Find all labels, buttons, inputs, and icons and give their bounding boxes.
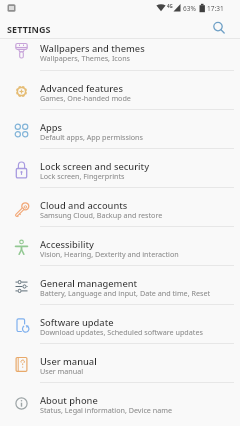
staticText: Samsung Cloud, Backup and restore bbox=[40, 210, 163, 220]
staticText: 63% bbox=[183, 4, 196, 13]
staticText: Vision, Hearing, Dexterity and interacti… bbox=[40, 249, 179, 259]
staticText: Default apps, App permissions bbox=[40, 132, 143, 142]
staticText: User manual bbox=[40, 355, 97, 368]
staticText: Software update bbox=[40, 316, 114, 329]
staticText: Games, One-handed mode bbox=[40, 93, 131, 103]
staticText: Wallpapers, Themes, Icons bbox=[40, 53, 131, 63]
staticText: Cloud and accounts bbox=[40, 199, 128, 212]
staticText: Status, Legal information, Device name bbox=[40, 405, 173, 415]
button[interactable]: Cloud and accounts bbox=[0, 188, 240, 227]
staticText: Download updates, Scheduled software upd… bbox=[40, 327, 203, 337]
button[interactable]: User manual bbox=[0, 344, 240, 383]
button[interactable]: Advanced features bbox=[0, 71, 240, 110]
button[interactable]: Software update bbox=[0, 305, 240, 344]
button[interactable]: Lock screen and security bbox=[0, 149, 240, 188]
staticText: Advanced features bbox=[40, 82, 123, 95]
staticText: 17:31 bbox=[207, 4, 224, 13]
staticText: 4G bbox=[167, 3, 173, 9]
staticText: General management bbox=[40, 277, 138, 290]
button[interactable]: Accessibility bbox=[0, 227, 240, 266]
staticText: About phone bbox=[40, 394, 98, 407]
staticText: SETTINGS bbox=[7, 23, 51, 35]
staticText: Apps bbox=[40, 121, 63, 134]
staticText: Battery, Language and input, Date and ti… bbox=[40, 288, 211, 298]
button[interactable]: Wallpapers and themes bbox=[0, 39, 240, 71]
staticText: Wallpapers and themes bbox=[40, 42, 145, 55]
staticText: Lock screen and security bbox=[40, 160, 150, 173]
button[interactable]: Apps bbox=[0, 110, 240, 149]
button[interactable] bbox=[202, 16, 236, 39]
staticText: Lock screen, Fingerprints bbox=[40, 171, 125, 181]
button[interactable]: About phone bbox=[0, 383, 240, 426]
staticText: User manual bbox=[40, 366, 84, 376]
button[interactable]: General management bbox=[0, 266, 240, 305]
staticText: Accessibility bbox=[40, 238, 94, 251]
